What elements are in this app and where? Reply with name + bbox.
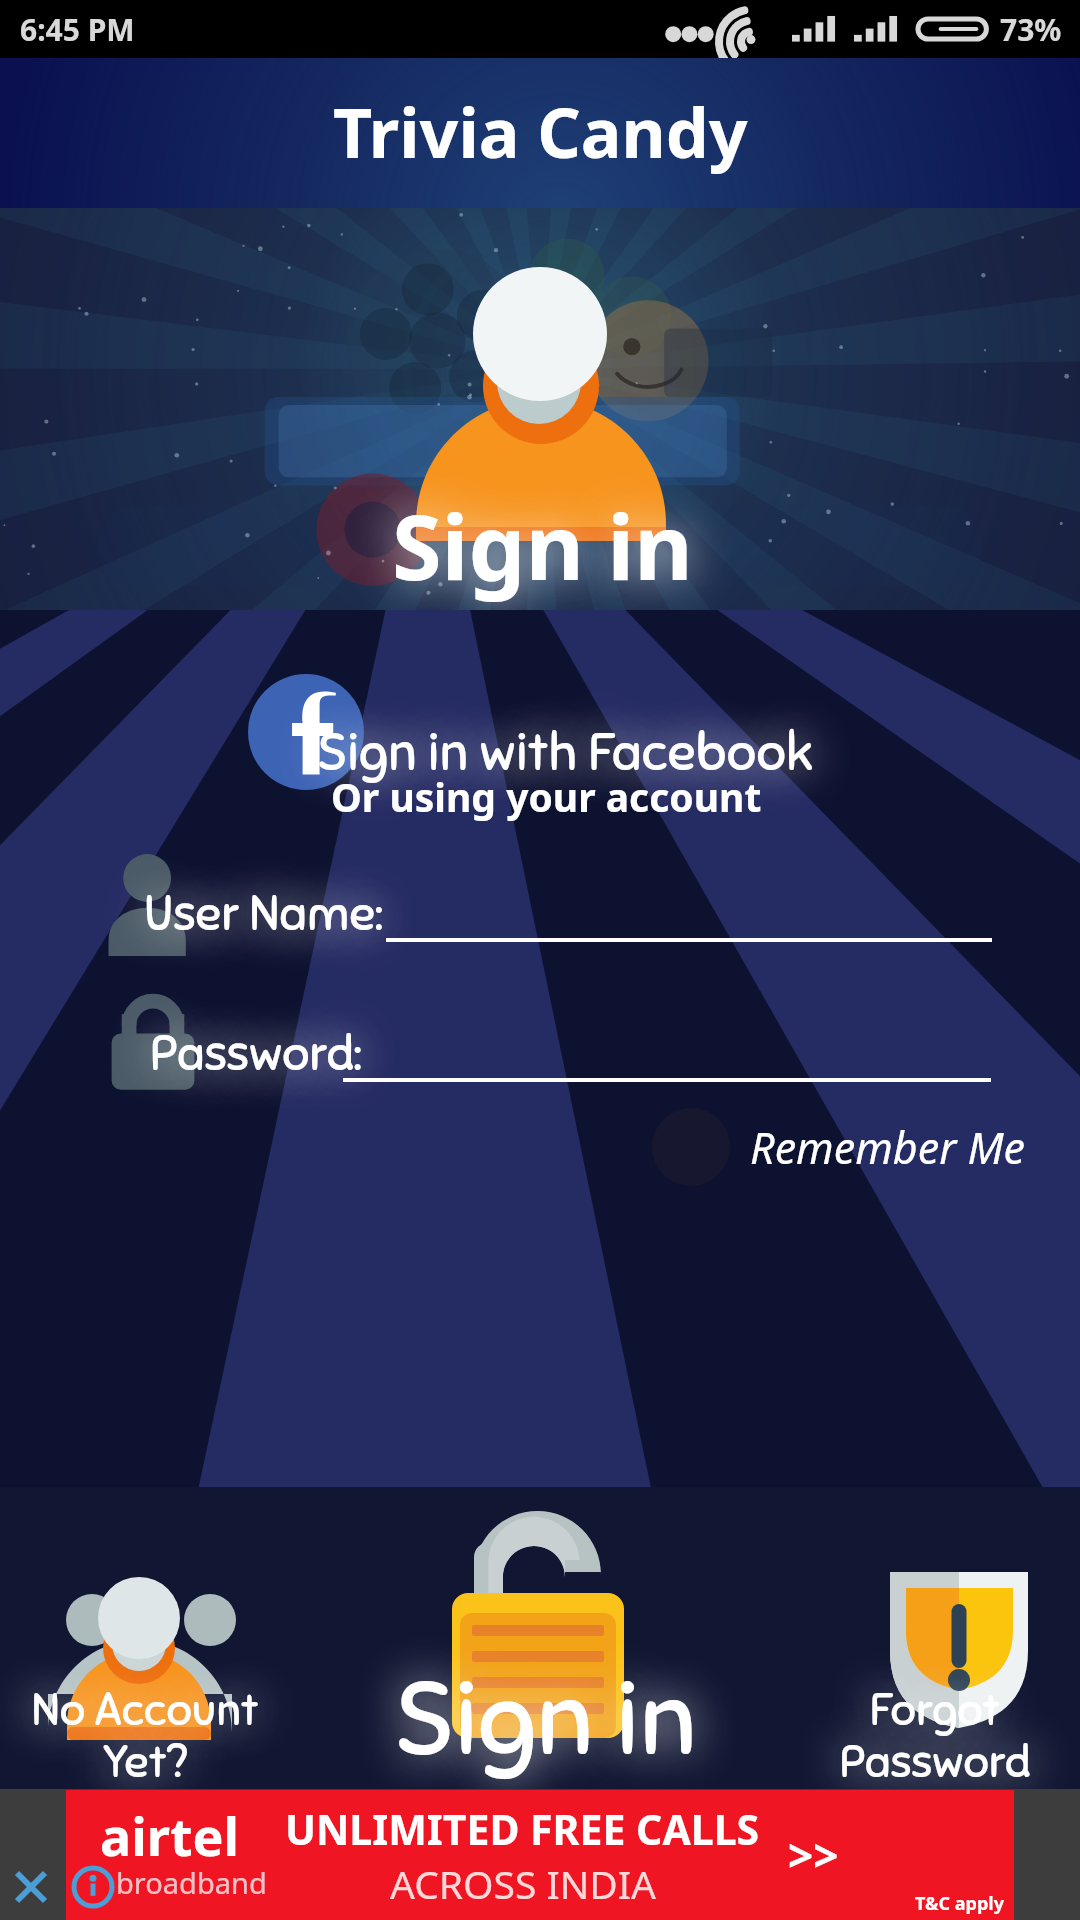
staticText: Sign in xyxy=(392,484,693,607)
staticText: Sign in with Facebook xyxy=(317,720,814,785)
staticText: Trivia Candy xyxy=(333,85,748,178)
staticText: Password: xyxy=(150,1024,362,1084)
button[interactable]: Sign in with Facebook xyxy=(243,676,843,788)
button[interactable]: Ad information xyxy=(62,1856,124,1918)
staticText: T&C apply xyxy=(915,1891,1004,1916)
staticText: 73% xyxy=(1000,9,1062,50)
staticText: User Name: xyxy=(144,884,383,944)
button[interactable]: airtel xyxy=(66,1790,1014,1920)
staticText: airtel xyxy=(100,1800,240,1871)
staticText: broadband xyxy=(116,1863,267,1902)
button[interactable]: Close ad xyxy=(0,1856,62,1918)
button[interactable]: Forgot Password xyxy=(790,1528,1080,1789)
staticText: Forgot Password xyxy=(790,1682,1080,1790)
staticText: Sign in xyxy=(394,1655,698,1784)
button[interactable] xyxy=(395,1498,685,1789)
staticText: UNLIMITED FREE CALLS xyxy=(285,1801,760,1857)
staticText: 6:45 PM xyxy=(20,9,135,50)
staticText: Remember Me xyxy=(750,1118,1026,1177)
button[interactable]: No Account Yet? xyxy=(0,1530,290,1789)
staticText: ACROSS INDIA xyxy=(390,1857,656,1910)
staticText: >> xyxy=(788,1825,839,1885)
button[interactable]: Remember Me xyxy=(652,1108,1026,1186)
staticText: No Account Yet? xyxy=(0,1682,290,1790)
staticText: Or using your account xyxy=(331,770,762,823)
